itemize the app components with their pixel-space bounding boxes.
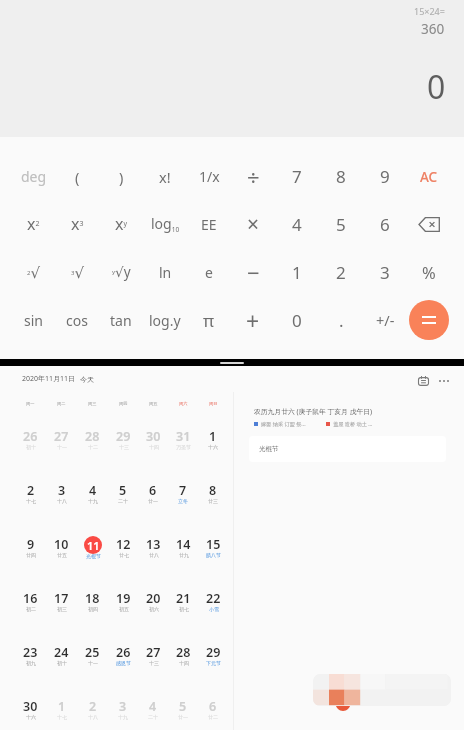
button[interactable]: 1 [198,414,228,468]
button[interactable]: 15 [198,522,228,576]
button[interactable]: 11 [77,522,108,576]
button[interactable]: 27 [46,414,77,468]
button[interactable]: 1/x [187,153,231,200]
staticText: 二十 [118,498,128,504]
button[interactable]: 6 [363,200,407,248]
button[interactable]: y√y [99,248,143,296]
staticText: 1/x [199,167,220,186]
button[interactable]: 31 [168,414,198,468]
button[interactable]: 18 [77,576,108,630]
button[interactable]: 6 [198,684,228,730]
staticText: 廿四 [26,552,36,558]
button[interactable]: 9 [363,153,407,200]
button[interactable]: 24 [46,630,77,684]
button[interactable]: 19 [108,576,138,630]
button[interactable]: 5 [168,684,198,730]
button[interactable]: 22 [198,576,228,630]
button[interactable]: 8 [198,468,228,522]
button[interactable]: 26 [108,630,138,684]
button[interactable]: 7 [168,468,198,522]
button[interactable]: . [319,296,363,344]
staticText: 初九 [26,660,36,666]
staticText: 3 [380,261,390,284]
staticText: 8 [336,165,346,188]
button[interactable]: 4 [275,200,319,248]
button[interactable]: 2 [319,248,363,296]
button[interactable]: ( [55,153,99,200]
button[interactable]: π [187,296,231,344]
button[interactable]: More options [433,371,455,390]
button[interactable] [407,200,451,248]
button[interactable]: Equals [409,300,449,340]
button[interactable]: x! [143,153,187,200]
button[interactable]: 1 [275,248,319,296]
button[interactable]: e [187,248,231,296]
button[interactable]: AC [407,153,451,200]
button[interactable]: 9 [15,522,46,576]
button[interactable]: +/- [363,296,407,344]
button[interactable]: 8 [319,153,363,200]
button[interactable]: 29 [198,630,228,684]
button[interactable]: 23 [15,630,46,684]
button[interactable]: 0 [275,296,319,344]
button[interactable]: 3√ [55,248,99,296]
button[interactable]: − [231,248,275,296]
button[interactable]: ÷ [231,153,275,200]
button[interactable]: 1 [46,684,77,730]
button[interactable]: Promotion [313,674,451,706]
button[interactable]: Go to today [412,374,434,387]
button[interactable]: 5 [319,200,363,248]
button[interactable]: ) [99,153,143,200]
button[interactable]: 4 [77,468,108,522]
button[interactable]: + [231,296,275,344]
button[interactable]: 3 [363,248,407,296]
button[interactable]: log.y [143,296,187,344]
button[interactable]: sin [12,296,55,344]
button[interactable]: 4 [138,684,168,730]
button[interactable]: tan [99,296,143,344]
button[interactable]: Equals [407,296,451,344]
button[interactable]: 30 [15,684,46,730]
button[interactable]: 28 [77,414,108,468]
button[interactable]: 10 [46,522,77,576]
button[interactable]: x3 [55,200,99,248]
staticText: 9 [27,536,35,553]
button[interactable]: 2 [77,684,108,730]
button[interactable]: 28 [168,630,198,684]
button[interactable]: deg [12,153,55,200]
button[interactable]: 21 [168,576,198,630]
button[interactable]: x2 [12,200,55,248]
button[interactable]: 25 [77,630,108,684]
button[interactable]: 17 [46,576,77,630]
button[interactable]: xy [99,200,143,248]
button[interactable]: ln [143,248,187,296]
staticText: 十六 [208,444,218,450]
button[interactable]: 16 [15,576,46,630]
button[interactable]: 5 [108,468,138,522]
button[interactable]: 光棍节 [249,436,446,462]
staticText: 廿七 [119,552,129,558]
staticText: 廿一 [178,714,188,720]
button[interactable]: 13 [138,522,168,576]
button[interactable]: 3 [108,684,138,730]
button[interactable]: 30 [138,414,168,468]
button[interactable]: 2√ [12,248,55,296]
button[interactable]: 7 [275,153,319,200]
staticText: x3 [71,213,84,235]
button[interactable]: 2 [15,468,46,522]
button[interactable]: EE [187,200,231,248]
button[interactable]: 12 [108,522,138,576]
staticText: x! [159,167,171,187]
button[interactable]: cos [55,296,99,344]
button[interactable]: 3 [46,468,77,522]
button[interactable]: 20 [138,576,168,630]
staticText: log10 [151,214,180,234]
button[interactable]: 6 [138,468,168,522]
button[interactable]: 29 [108,414,138,468]
button[interactable]: × [231,200,275,248]
button[interactable]: % [407,248,451,296]
button[interactable]: 26 [15,414,46,468]
button[interactable]: log10 [143,200,187,248]
button[interactable]: 27 [138,630,168,684]
button[interactable]: 14 [168,522,198,576]
